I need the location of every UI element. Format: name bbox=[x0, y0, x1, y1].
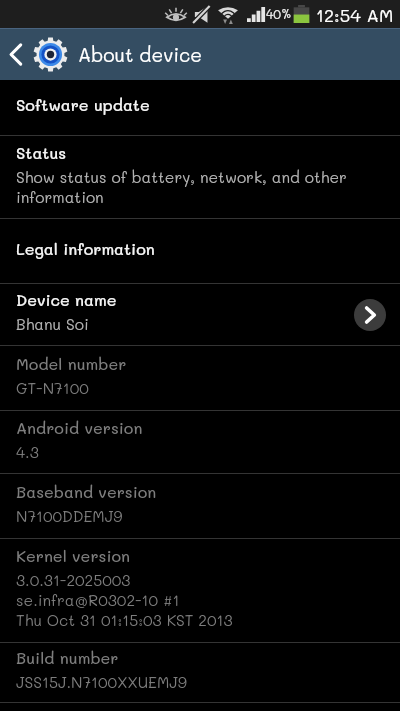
staticText: 12:54 AM bbox=[316, 3, 394, 26]
staticText: Device name bbox=[16, 289, 117, 310]
button[interactable]: Build number bbox=[0, 643, 400, 702]
button[interactable]: Model number bbox=[0, 346, 400, 410]
staticText: N7100DDEMJ9 bbox=[16, 506, 123, 526]
staticText: JSS15J.N7100XXUEMJ9 bbox=[16, 672, 187, 692]
button[interactable]: Software update bbox=[0, 80, 400, 135]
staticText: Build number bbox=[16, 647, 119, 668]
button[interactable]: Kernel version bbox=[0, 539, 400, 642]
button[interactable]: Device name bbox=[0, 284, 400, 345]
staticText: Show status of battery, network, and oth… bbox=[16, 167, 386, 207]
button[interactable]: Android version bbox=[0, 411, 400, 473]
staticText: Baseband version bbox=[16, 481, 157, 502]
staticText: 4.3 bbox=[16, 442, 39, 462]
button[interactable]: Navigate up bbox=[0, 28, 73, 80]
button[interactable]: Baseband version bbox=[0, 474, 400, 538]
staticText: Android version bbox=[16, 417, 143, 438]
staticText: GT-N7100 bbox=[16, 378, 89, 398]
staticText: About device bbox=[78, 42, 202, 67]
staticText: 40% bbox=[266, 6, 292, 22]
button[interactable]: Legal information bbox=[0, 219, 400, 283]
button[interactable]: Edit device name bbox=[354, 299, 386, 331]
staticText: 3.0.31-2025003 se.infra@R0302-10 #1 Thu … bbox=[16, 570, 233, 630]
staticText: Software update bbox=[16, 94, 150, 115]
staticText: Model number bbox=[16, 353, 127, 374]
staticText: Legal information bbox=[16, 238, 155, 259]
staticText: Status bbox=[16, 142, 67, 163]
button[interactable]: Status bbox=[0, 136, 400, 218]
staticText: Bhanu Soi bbox=[16, 314, 89, 334]
staticText: Kernel version bbox=[16, 545, 131, 566]
